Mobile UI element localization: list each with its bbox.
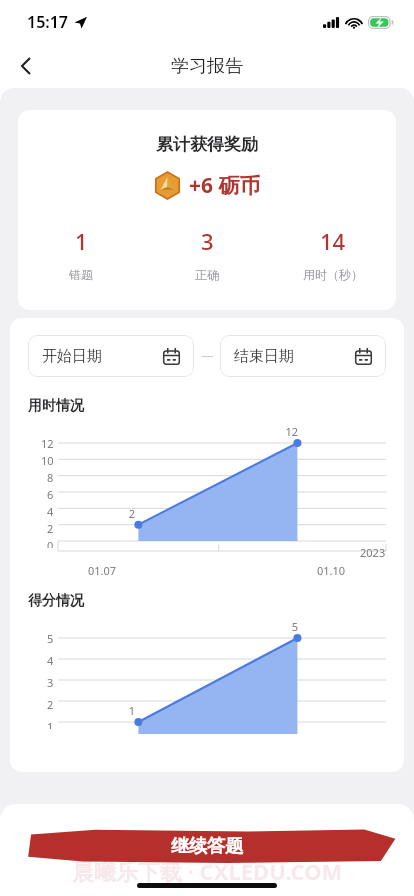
button[interactable]: 结束日期 — [220, 335, 386, 377]
staticText: 2 — [47, 697, 54, 712]
staticText: 2023 — [360, 545, 386, 560]
staticText: 错题 — [69, 267, 93, 282]
staticText: 8 — [47, 470, 54, 485]
staticText: 15:17 — [27, 11, 69, 33]
button[interactable]: 继续答题 — [0, 828, 414, 864]
staticText: 1 — [47, 719, 54, 729]
staticText: 5 — [47, 631, 54, 646]
staticText: 累计获得奖励 — [156, 134, 258, 155]
staticText: 4 — [47, 504, 54, 519]
staticText: 2 — [47, 521, 54, 536]
staticText: 正确 — [195, 267, 219, 282]
button[interactable]: Back — [4, 44, 48, 88]
staticText: 晨曦乐下载 · CXLEDU.COM — [72, 856, 343, 886]
staticText: 4 — [47, 653, 54, 668]
staticText: 01.10 — [317, 563, 346, 578]
staticText: 3 — [47, 675, 54, 690]
staticText: 3 — [201, 226, 214, 256]
staticText: 2 — [28, 506, 135, 521]
staticText: 12 — [28, 424, 298, 439]
staticText: 10 — [41, 453, 54, 468]
staticText: 6 — [47, 487, 54, 502]
staticText: 学习报告 — [171, 55, 243, 78]
staticText: 用时情况 — [28, 397, 84, 415]
staticText: 14 — [320, 226, 346, 256]
staticText: 用时（秒） — [303, 267, 363, 282]
staticText: 1 — [75, 226, 88, 256]
staticText: 12 — [41, 436, 54, 451]
button[interactable]: 开始日期 — [28, 335, 194, 377]
staticText: 开始日期 — [42, 347, 102, 366]
staticText: 0 — [47, 538, 54, 548]
staticText: 得分情况 — [28, 592, 84, 610]
staticText: 继续答题 — [171, 835, 243, 858]
staticText: 结束日期 — [234, 347, 294, 366]
staticText: 01.07 — [88, 563, 117, 578]
staticText: 5 — [28, 619, 298, 634]
staticText: +6 砺币 — [189, 171, 261, 200]
staticText: 1 — [28, 703, 135, 718]
